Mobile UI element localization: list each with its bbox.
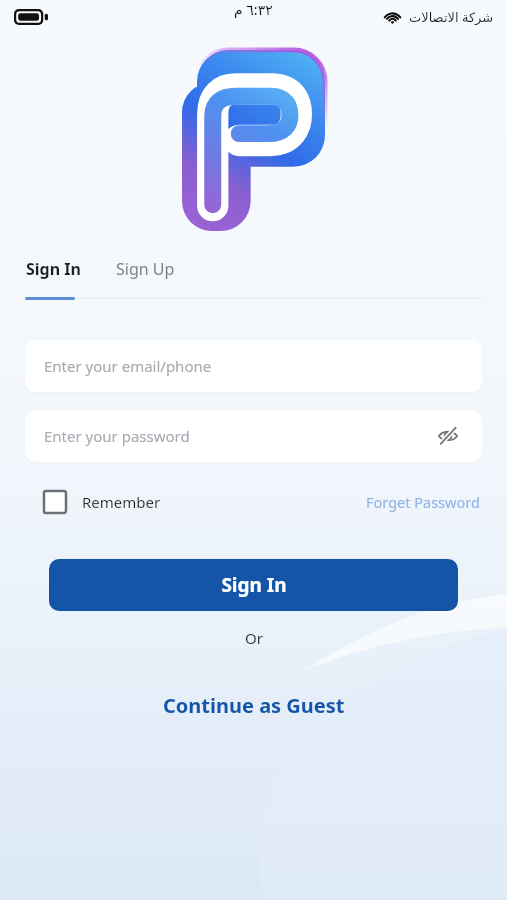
button[interactable]: Forget Password xyxy=(364,488,482,516)
button[interactable]: Sign Up xyxy=(115,254,176,284)
staticText: Or xyxy=(245,628,263,648)
staticText: Sign In xyxy=(26,258,81,280)
staticText: Continue as Guest xyxy=(163,692,345,719)
button[interactable]: Continue as Guest xyxy=(151,686,357,725)
staticText: Remember xyxy=(82,492,161,512)
button[interactable]: Sign In xyxy=(49,559,458,611)
staticText: Forget Password xyxy=(366,492,480,512)
button[interactable]: Remember xyxy=(25,487,163,517)
button[interactable]: Enter your email/phone xyxy=(25,340,482,392)
staticText: شركة الاتصالات xyxy=(409,8,494,26)
staticText: Enter your password xyxy=(44,426,433,446)
staticText: ٦:٣٢ م xyxy=(234,0,273,19)
button[interactable]: Show password xyxy=(433,421,463,451)
staticText: Sign In xyxy=(221,572,287,598)
staticText: Enter your email/phone xyxy=(44,356,463,376)
button[interactable]: Sign In xyxy=(25,254,82,284)
button[interactable]: Enter your password xyxy=(25,410,482,462)
staticText: Sign Up xyxy=(116,258,175,280)
